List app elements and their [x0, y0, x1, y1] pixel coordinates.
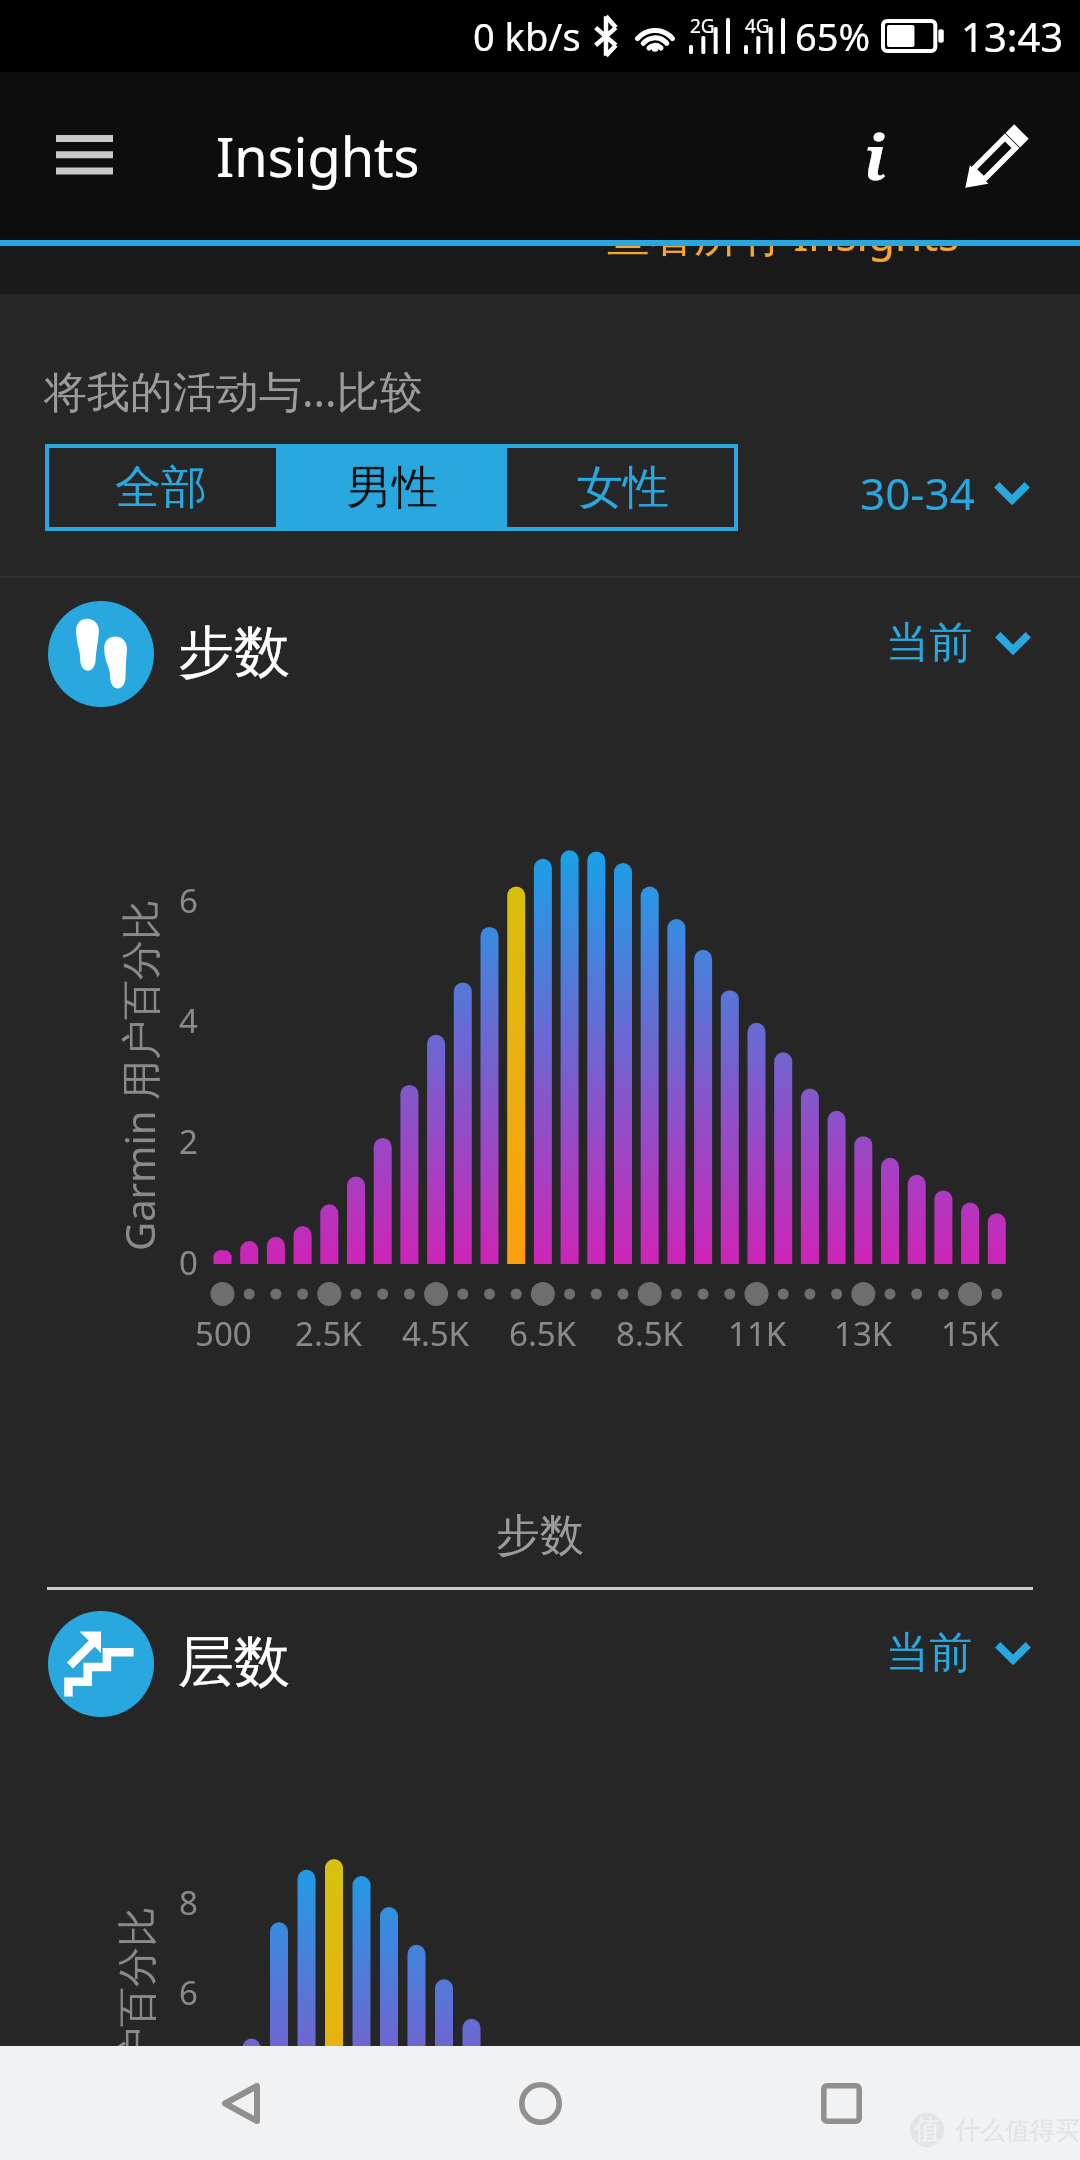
staticText: 2.5K — [295, 1311, 363, 1356]
button[interactable]: Back — [141, 2046, 341, 2160]
staticText: 2 — [179, 1119, 198, 1164]
staticText: 值 — [914, 2113, 941, 2147]
button[interactable]: 当前 — [880, 1620, 1038, 1686]
staticText: 0 kb/s — [473, 10, 581, 62]
staticText: 500 — [195, 1311, 252, 1356]
staticText: 15K — [941, 1311, 1000, 1356]
button[interactable]: Recents — [741, 2046, 941, 2160]
staticText: 30-34 — [860, 463, 975, 523]
staticText: i — [864, 114, 886, 198]
button[interactable]: 30-34 — [852, 455, 1039, 531]
staticText: Garmin 用户百分比 — [107, 1872, 162, 2160]
staticText: 查看所有 Insights — [606, 204, 960, 264]
staticText: Insights — [216, 119, 420, 193]
button[interactable]: 全部 — [45, 444, 276, 531]
staticText: 8 — [179, 1880, 198, 1925]
button[interactable]: 查看所有 Insights — [606, 204, 1010, 264]
staticText: 11K — [728, 1311, 787, 1356]
staticText: 什么值得买 — [955, 2115, 1080, 2146]
staticText: 65% — [795, 10, 871, 62]
staticText: 0 — [179, 1240, 198, 1285]
button[interactable]: Menu — [36, 107, 132, 203]
button[interactable]: Home — [440, 2046, 640, 2160]
staticText: 4G — [745, 13, 770, 39]
button[interactable]: 当前 — [880, 610, 1038, 676]
button[interactable]: 层数 — [0, 1591, 1080, 1737]
staticText: 4.5K — [402, 1311, 470, 1356]
staticText: 将我的活动与...比较 — [44, 361, 423, 420]
staticText: 层数 — [178, 1627, 290, 1698]
button[interactable]: 女性 — [507, 444, 738, 531]
staticText: 女性 — [577, 459, 669, 517]
button[interactable]: Edit — [942, 101, 1052, 211]
staticText: 4 — [179, 998, 198, 1043]
staticText: Garmin 用户百分比 — [111, 865, 166, 1285]
button[interactable]: 步数 — [0, 581, 1080, 727]
staticText: 2G — [690, 13, 715, 39]
staticText: 男性 — [346, 459, 438, 517]
staticText: 步数 — [496, 1508, 584, 1563]
staticText: 8.5K — [616, 1311, 684, 1356]
staticText: 当前 — [886, 616, 972, 670]
button[interactable]: 男性 — [276, 444, 507, 531]
staticText: 13K — [834, 1311, 893, 1356]
staticText: 6 — [179, 878, 198, 923]
staticText: 步数 — [178, 617, 290, 688]
staticText: 全部 — [115, 459, 207, 517]
staticText: 6 — [179, 1970, 198, 2015]
staticText: 6.5K — [509, 1311, 577, 1356]
staticText: 当前 — [886, 1626, 972, 1680]
button[interactable]: Info — [820, 101, 930, 211]
staticText: 13:43 — [961, 9, 1064, 63]
